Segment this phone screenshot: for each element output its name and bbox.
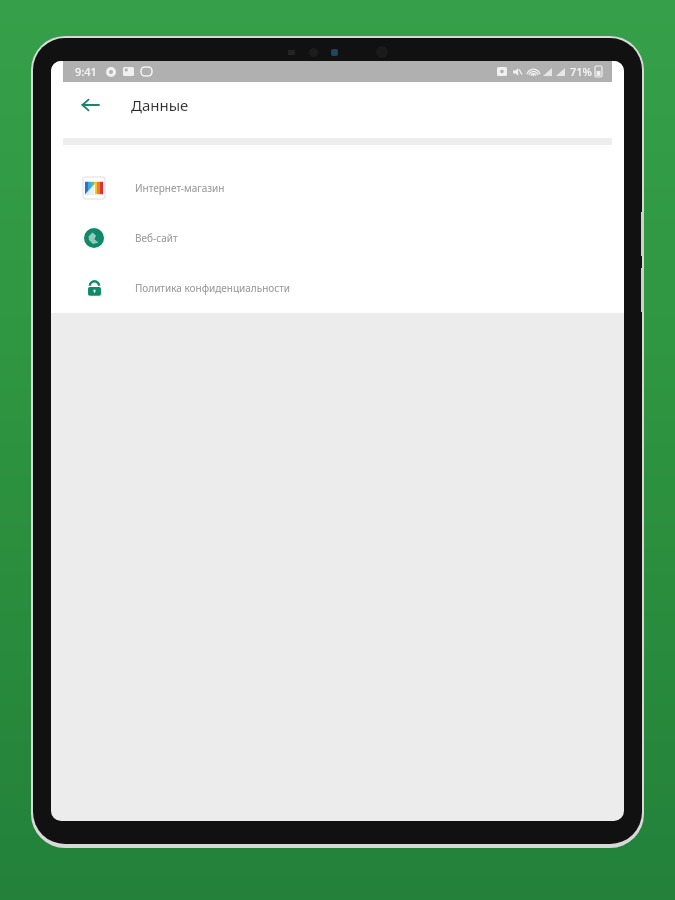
button[interactable]: Интернет-магазин (51, 163, 624, 213)
staticText: Данные (131, 95, 189, 115)
staticText: Политика конфиденциальности (135, 281, 291, 295)
staticText: 9:41 (75, 64, 97, 79)
button[interactable]: Back (73, 88, 107, 122)
staticText: Интернет-магазин (135, 181, 225, 195)
staticText: Веб-сайт (135, 231, 178, 245)
staticText: 71% (570, 64, 592, 79)
button[interactable]: Политика конфиденциальности (51, 263, 624, 313)
button[interactable]: Веб-сайт (51, 213, 624, 263)
